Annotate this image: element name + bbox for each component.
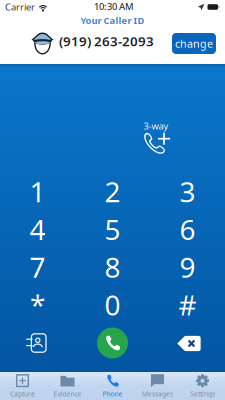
staticText: Carrier: [5, 1, 35, 13]
button[interactable]: #: [150, 286, 225, 323]
button[interactable]: 3-way: [132, 120, 180, 156]
button[interactable]: Contacts: [5, 326, 67, 360]
button[interactable]: Your Caller ID: [0, 14, 225, 27]
staticText: change: [175, 36, 213, 51]
button[interactable]: 8: [75, 248, 150, 286]
button[interactable]: 0: [75, 286, 150, 323]
staticText: 7: [29, 248, 45, 285]
staticText: Phone: [102, 389, 122, 398]
button[interactable]: 2: [75, 173, 150, 210]
staticText: 1: [29, 173, 45, 210]
button[interactable]: change: [172, 33, 216, 54]
button[interactable]: 3: [150, 173, 225, 210]
staticText: Capture: [10, 389, 35, 398]
button[interactable]: Evidence: [45, 372, 90, 400]
button[interactable]: *: [0, 286, 75, 323]
button[interactable]: 5: [75, 210, 150, 248]
button[interactable]: Delete: [158, 326, 220, 360]
staticText: 8: [104, 248, 120, 285]
button[interactable]: Call: [81, 326, 143, 360]
button[interactable]: 7: [0, 248, 75, 286]
button[interactable]: 1: [0, 173, 75, 210]
button[interactable]: 4: [0, 210, 75, 248]
staticText: 3-way: [143, 120, 168, 132]
staticText: 4: [29, 211, 45, 248]
staticText: (919) 263-2093: [59, 32, 154, 50]
staticText: 3: [179, 173, 195, 210]
staticText: Evidence: [53, 389, 81, 398]
staticText: Settings: [190, 389, 215, 398]
button[interactable]: 9: [150, 248, 225, 286]
staticText: #: [178, 286, 196, 323]
button[interactable]: Messages: [135, 372, 180, 400]
staticText: 2: [104, 173, 120, 210]
staticText: 5: [104, 211, 120, 248]
button[interactable]: 6: [150, 210, 225, 248]
staticText: 9: [179, 248, 195, 285]
button[interactable]: Settings: [180, 372, 225, 400]
staticText: Messages: [142, 389, 173, 398]
staticText: Your Caller ID: [80, 14, 144, 27]
staticText: 6: [179, 211, 195, 248]
staticText: 0: [104, 286, 120, 323]
staticText: 10:30 AM: [94, 0, 134, 13]
button[interactable]: Phone: [90, 372, 135, 400]
staticText: *: [30, 286, 45, 323]
button[interactable]: Capture: [0, 372, 45, 400]
